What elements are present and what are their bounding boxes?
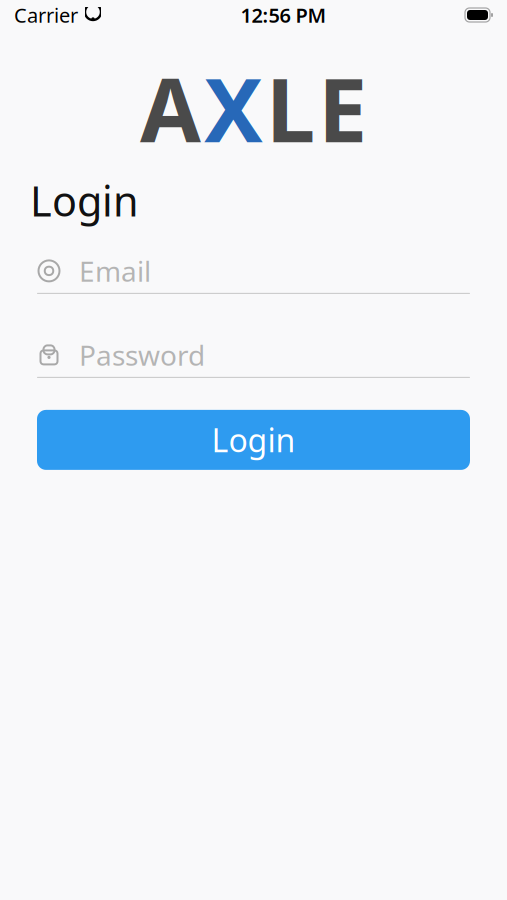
staticText: E (318, 50, 367, 166)
staticText: Carrier (14, 2, 78, 28)
staticText: Login (30, 173, 139, 228)
staticText: Email (79, 252, 151, 289)
staticText: L (266, 50, 315, 166)
staticText: A (140, 50, 201, 166)
button[interactable]: Email (37, 249, 470, 294)
staticText: Password (79, 336, 205, 373)
staticText: X (204, 50, 263, 166)
button[interactable]: Login (37, 410, 470, 470)
button[interactable]: Password (37, 333, 470, 378)
staticText: Login (211, 419, 295, 461)
staticText: 12:56 PM (240, 2, 326, 28)
